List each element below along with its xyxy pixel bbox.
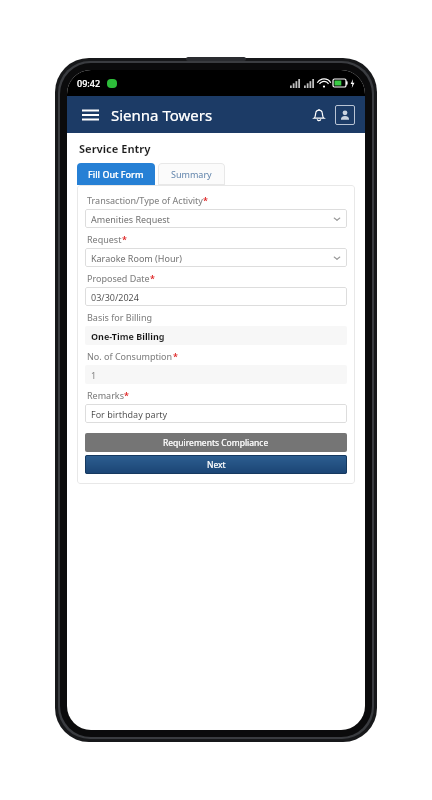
staticText: Sienna Towers <box>111 105 213 125</box>
button[interactable]: Requirements Compliance <box>85 433 347 452</box>
staticText: No. of Consumption <box>87 350 173 362</box>
staticText: 1 <box>91 369 341 381</box>
button[interactable]: One-Time Billing <box>85 326 347 345</box>
button[interactable]: Profile <box>335 105 355 125</box>
staticText: Requirements Compliance <box>163 437 269 449</box>
staticText: * <box>203 194 208 206</box>
staticText: Remarks <box>87 389 124 401</box>
staticText: Transaction/Type of Activity <box>87 194 203 206</box>
staticText: Fill Out Form <box>88 168 144 180</box>
button[interactable]: Karaoke Room (Hour) <box>85 248 347 267</box>
staticText: Summary <box>171 168 212 180</box>
staticText: * <box>173 350 178 362</box>
button[interactable]: Notifications <box>307 103 331 127</box>
staticText: Service Entry <box>79 141 151 156</box>
button[interactable]: For birthday party <box>85 404 347 423</box>
button[interactable]: Next <box>85 455 347 474</box>
button[interactable]: Menu <box>77 102 103 128</box>
button[interactable]: 03/30/2024 <box>85 287 347 306</box>
staticText: 03/30/2024 <box>91 291 341 303</box>
staticText: Request <box>87 233 122 245</box>
staticText: Amenities Request <box>91 213 333 225</box>
staticText: Next <box>207 459 226 471</box>
staticText: Basis for Billing <box>87 311 153 323</box>
button[interactable]: 1 <box>85 365 347 384</box>
staticText: Karaoke Room (Hour) <box>91 252 333 264</box>
staticText: Proposed Date <box>87 272 150 284</box>
button[interactable]: Amenities Request <box>85 209 347 228</box>
button[interactable]: Fill Out Form <box>77 163 155 185</box>
staticText: * <box>150 272 155 284</box>
staticText: * <box>122 233 127 245</box>
staticText: * <box>124 389 129 401</box>
staticText: For birthday party <box>91 408 341 420</box>
staticText: 09:42 <box>77 77 101 89</box>
staticText: One-Time Billing <box>91 330 341 342</box>
button[interactable]: Summary <box>158 163 225 185</box>
